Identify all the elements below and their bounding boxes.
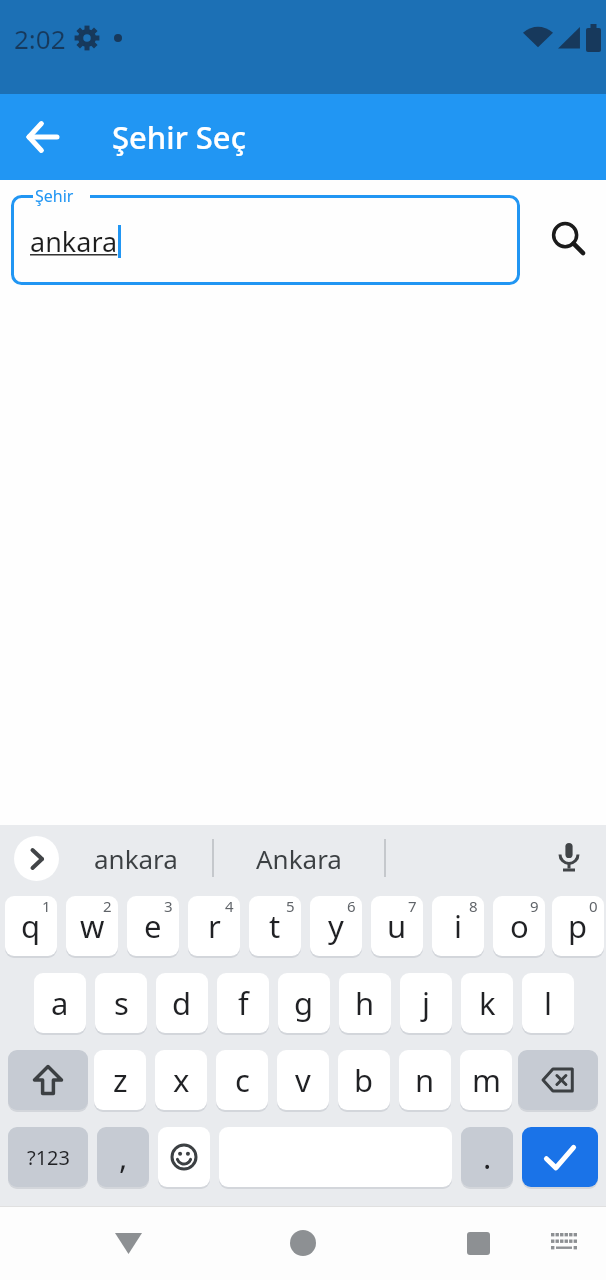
staticText: k [479, 982, 496, 1024]
button[interactable]: h [339, 973, 391, 1033]
staticText: Şehir Seç [112, 116, 246, 158]
staticText: v [295, 1059, 311, 1101]
staticText: 4 [225, 896, 234, 916]
staticText: 0 [589, 896, 598, 916]
button[interactable]: x [155, 1050, 207, 1110]
staticText: r [208, 905, 221, 947]
staticText: . [483, 1136, 492, 1178]
button[interactable]: o [493, 896, 545, 956]
staticText: n [415, 1059, 435, 1101]
button[interactable]: n [399, 1050, 451, 1110]
staticText: f [238, 982, 249, 1024]
button[interactable]: d [156, 973, 208, 1033]
staticText: u [387, 905, 407, 947]
button[interactable]: m [460, 1050, 512, 1110]
staticText: g [294, 982, 314, 1024]
staticText: j [422, 982, 430, 1024]
button[interactable] [538, 208, 598, 268]
staticText: Ankara [256, 841, 342, 876]
button[interactable]: v [277, 1050, 329, 1110]
button[interactable] [10, 104, 76, 170]
staticText: h [355, 982, 375, 1024]
staticText: q [21, 905, 41, 947]
staticText: z [113, 1059, 128, 1101]
button[interactable]: q [5, 896, 57, 956]
staticText: 8 [469, 896, 478, 916]
staticText: 5 [286, 896, 295, 916]
button[interactable]: ankara [59, 825, 212, 891]
staticText: a [51, 982, 69, 1024]
button[interactable]: w [66, 896, 118, 956]
staticText: m [472, 1059, 501, 1101]
button[interactable]: ?123 [8, 1127, 88, 1187]
button[interactable]: Şehir [11, 195, 520, 285]
button[interactable]: r [188, 896, 240, 956]
staticText: ?123 [27, 1144, 70, 1171]
staticText: b [354, 1059, 374, 1101]
button[interactable]: k [461, 973, 513, 1033]
staticText: 6 [347, 896, 356, 916]
button[interactable] [106, 1221, 150, 1265]
button[interactable]: p [552, 896, 604, 956]
staticText: 3 [164, 896, 173, 916]
button[interactable] [158, 1127, 210, 1187]
button[interactable]: y [310, 896, 362, 956]
button[interactable]: l [522, 973, 574, 1033]
button[interactable] [544, 1223, 584, 1263]
staticText: w [80, 905, 105, 947]
button[interactable]: s [95, 973, 147, 1033]
staticText: d [172, 982, 192, 1024]
button[interactable] [546, 835, 592, 881]
button[interactable]: g [278, 973, 330, 1033]
staticText: 2 [103, 896, 112, 916]
staticText: t [269, 905, 281, 947]
staticText: 2:02 [14, 21, 66, 56]
staticText: i [454, 905, 462, 947]
button[interactable]: , [97, 1127, 149, 1187]
button[interactable] [522, 1127, 598, 1187]
button[interactable]: z [94, 1050, 146, 1110]
staticText: x [173, 1059, 190, 1101]
button[interactable] [8, 1050, 88, 1110]
staticText: ankara [94, 841, 178, 876]
staticText: e [144, 905, 162, 947]
button[interactable]: u [371, 896, 423, 956]
button[interactable]: j [400, 973, 452, 1033]
button[interactable]: f [217, 973, 269, 1033]
button[interactable]: a [34, 973, 86, 1033]
staticText: 9 [530, 896, 539, 916]
staticText: 7 [408, 896, 417, 916]
button[interactable]: e [127, 896, 179, 956]
staticText: Şehir [35, 185, 74, 207]
button[interactable] [14, 836, 59, 881]
staticText: 1 [42, 896, 51, 916]
button[interactable] [456, 1221, 500, 1265]
button[interactable]: c [216, 1050, 268, 1110]
button[interactable]: b [338, 1050, 390, 1110]
staticText: p [568, 905, 588, 947]
button[interactable] [281, 1221, 325, 1265]
staticText: y [328, 905, 344, 947]
button[interactable]: Ankara [214, 825, 384, 891]
staticText: s [114, 982, 129, 1024]
staticText: ankara [30, 223, 118, 260]
staticText: c [235, 1059, 250, 1101]
staticText: o [510, 905, 529, 947]
staticText: , [119, 1136, 128, 1178]
staticText: l [544, 982, 552, 1024]
button[interactable]: t [249, 896, 301, 956]
button[interactable]: i [432, 896, 484, 956]
button[interactable] [518, 1050, 598, 1110]
button[interactable]: . [461, 1127, 513, 1187]
